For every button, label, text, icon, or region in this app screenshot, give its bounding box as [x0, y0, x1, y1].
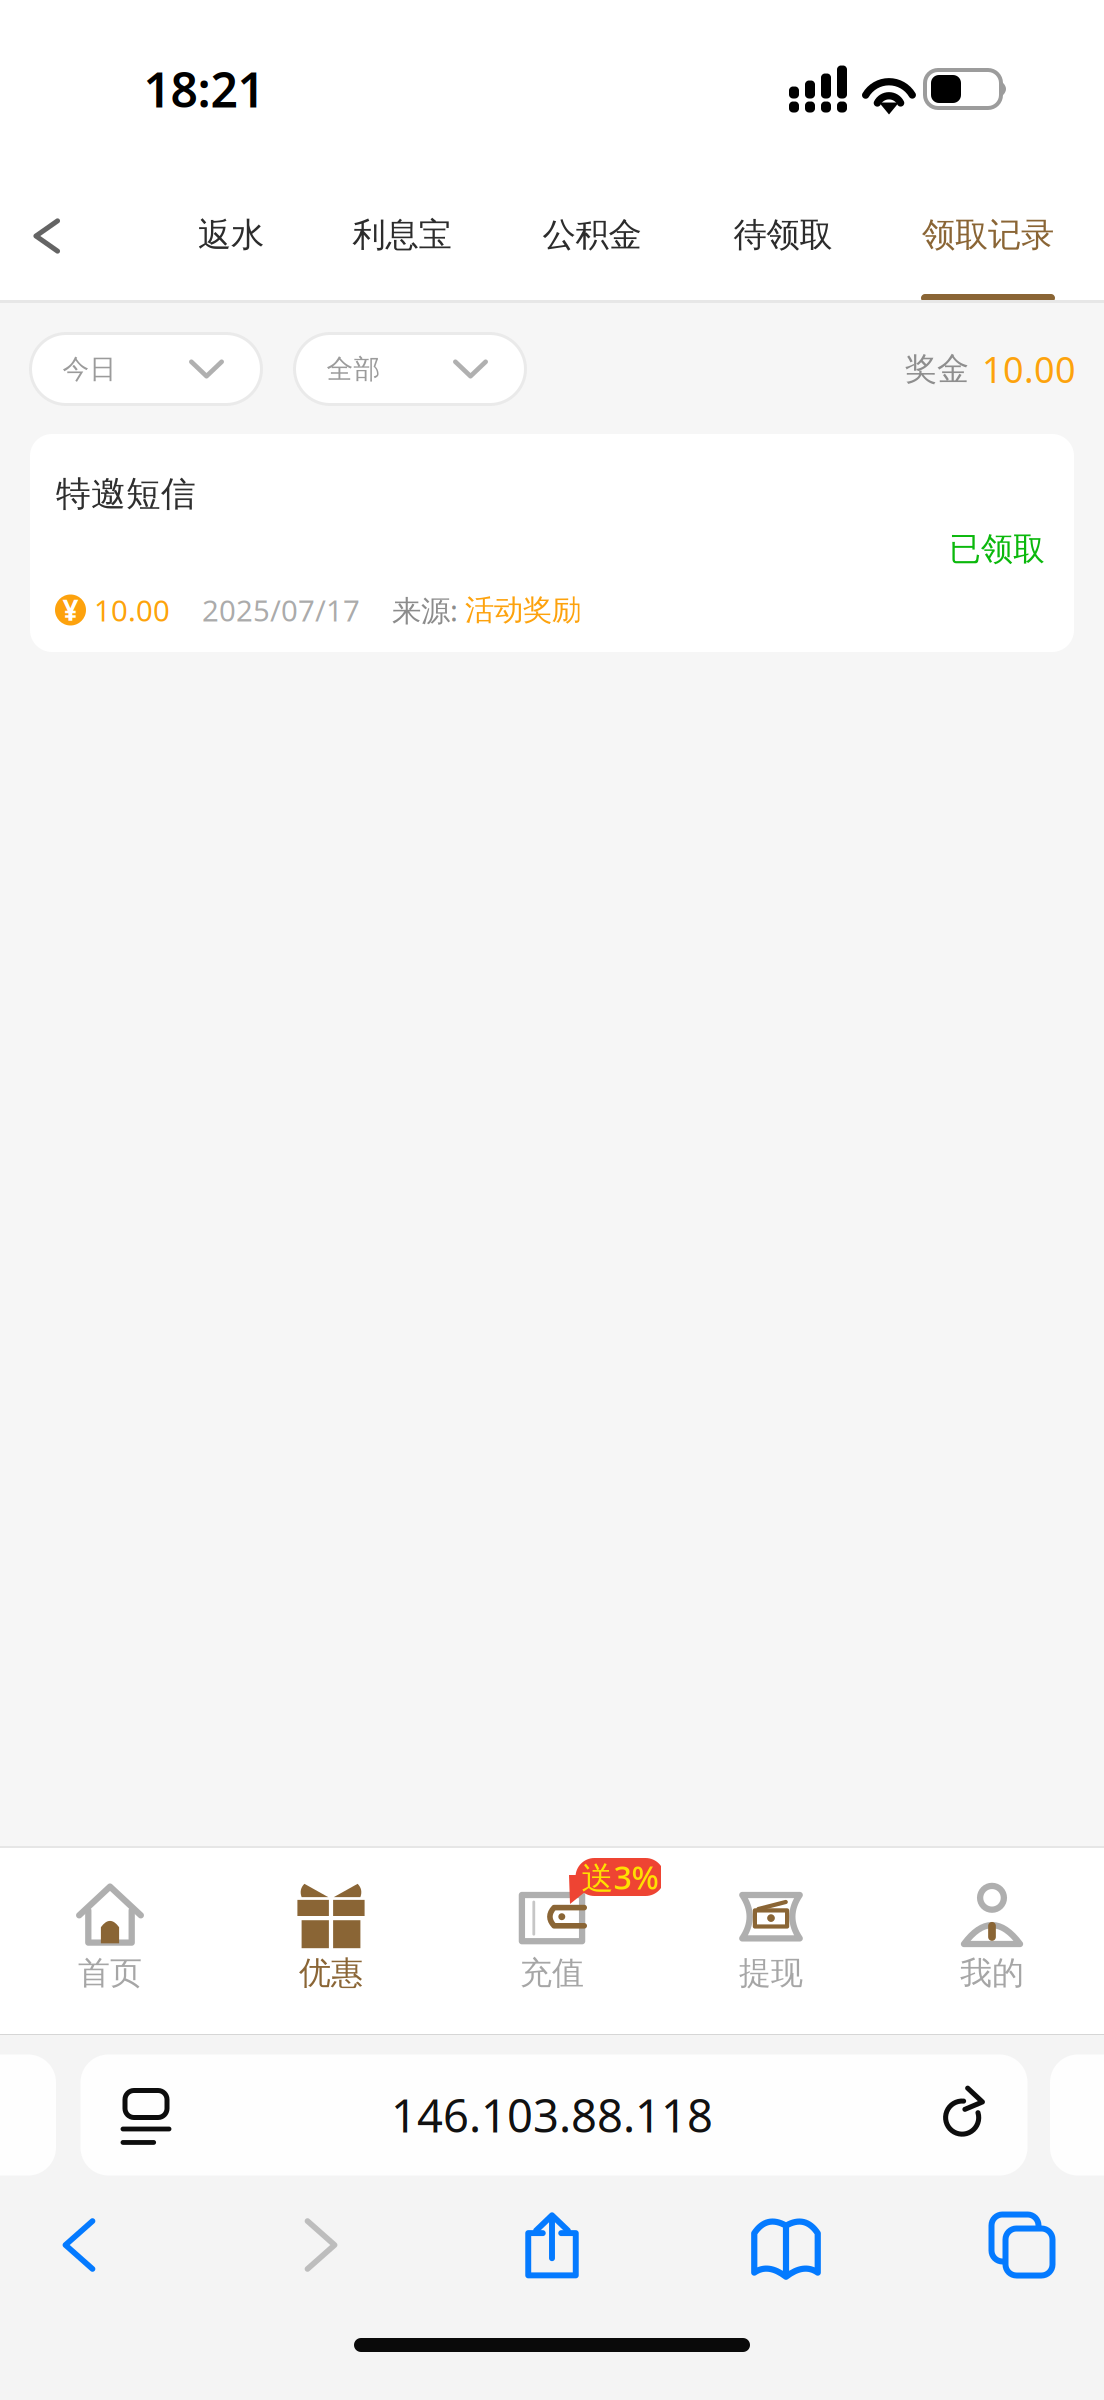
button[interactable]: 今日 — [30, 333, 261, 404]
button[interactable]: 我的 — [882, 1848, 1102, 2034]
staticText: 18:21 — [143, 57, 264, 121]
button[interactable]: Back — [0, 2190, 180, 2300]
staticText: 全部 — [326, 353, 380, 385]
staticText: 2025/07/17 — [202, 590, 360, 629]
staticText: 送3% — [581, 1856, 658, 1898]
staticText: 10.00 — [94, 590, 170, 629]
button[interactable]: 提现 — [661, 1848, 881, 2034]
button[interactable]: 利息宝 — [307, 170, 497, 302]
staticText: 利息宝 — [352, 214, 451, 255]
button[interactable]: 返水 — [136, 170, 326, 302]
button[interactable]: 公积金 — [497, 170, 687, 302]
button[interactable]: Forward — [220, 2190, 420, 2300]
staticText: 首页 — [78, 1953, 142, 1993]
staticText: 公积金 — [542, 214, 641, 255]
button[interactable]: 领取记录 — [893, 170, 1083, 302]
button[interactable]: Reload — [914, 2063, 1014, 2163]
button[interactable]: Back — [0, 170, 102, 302]
staticText: 奖金 — [905, 349, 969, 389]
staticText: 特邀短信 — [56, 473, 196, 515]
button[interactable]: 优惠 — [221, 1848, 441, 2034]
staticText: ¥ — [62, 591, 78, 629]
button[interactable]: Bookmarks — [686, 2190, 886, 2300]
button[interactable]: 全部 — [294, 333, 525, 404]
staticText: 待领取 — [733, 214, 832, 255]
staticText: 10.00 — [982, 345, 1076, 393]
button[interactable]: Share — [452, 2190, 652, 2300]
staticText: 优惠 — [299, 1953, 363, 1993]
staticText: 领取记录 — [922, 214, 1054, 255]
staticText: 返水 — [198, 214, 264, 255]
staticText: 活动奖励 — [465, 592, 581, 628]
button[interactable]: Page settings — [92, 2061, 200, 2169]
staticText: 充值 — [520, 1953, 584, 1993]
button[interactable]: 充值 — [442, 1848, 662, 2034]
button[interactable]: Tabs — [922, 2190, 1104, 2300]
button[interactable]: 待领取 — [688, 170, 878, 302]
staticText: 来源: — [392, 590, 458, 629]
staticText: 已领取 — [949, 529, 1045, 569]
staticText: 提现 — [739, 1953, 803, 1993]
staticText: 146.103.88.118 — [391, 2085, 713, 2145]
button[interactable]: 首页 — [0, 1848, 220, 2034]
staticText: 我的 — [960, 1953, 1024, 1993]
staticText: 今日 — [62, 353, 116, 385]
